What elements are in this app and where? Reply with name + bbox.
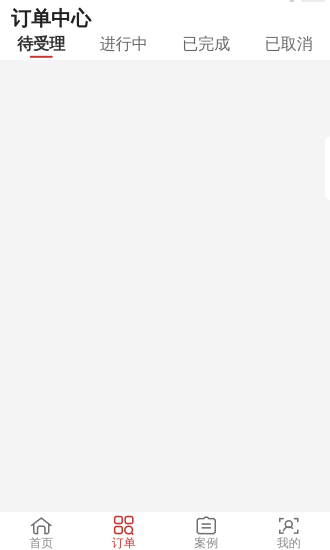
- staticText: 待受理: [17, 34, 65, 54]
- staticText: 进行中: [100, 34, 148, 54]
- staticText: 订单: [112, 536, 136, 550]
- button[interactable]: 我的: [247, 510, 330, 550]
- button[interactable]: 已完成: [165, 34, 247, 58]
- staticText: 订单中心: [11, 6, 91, 31]
- staticText: 已完成: [182, 34, 230, 54]
- staticText: 首页: [29, 536, 53, 550]
- button[interactable]: 已取消: [247, 34, 330, 58]
- staticText: 案例: [194, 536, 218, 550]
- button[interactable]: 订单: [82, 510, 165, 550]
- button[interactable]: 案例: [165, 510, 247, 550]
- staticText: 我的: [277, 536, 301, 550]
- button[interactable]: 首页: [0, 510, 82, 550]
- staticText: 已取消: [265, 34, 313, 54]
- button[interactable]: 进行中: [82, 34, 165, 58]
- button[interactable]: 待受理: [0, 34, 82, 58]
